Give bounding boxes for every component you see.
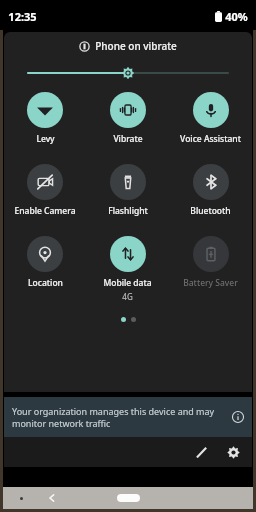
staticText: Location <box>28 277 63 289</box>
button[interactable]: Home <box>117 494 140 502</box>
staticText: Flashlight <box>108 205 148 217</box>
staticText: Bluetooth <box>190 205 231 217</box>
staticText: 12:35 <box>8 9 37 24</box>
staticText: Battery Saver <box>183 277 238 289</box>
button[interactable]: Voice Assistant <box>169 92 252 145</box>
button[interactable]: Battery Saver <box>169 236 252 289</box>
button[interactable]: Location <box>4 236 86 289</box>
other: Info <box>232 411 244 423</box>
button[interactable]: Vibrate <box>86 92 169 145</box>
button[interactable]: Bluetooth <box>169 164 252 217</box>
button[interactable]: Brightness <box>4 64 252 82</box>
button[interactable]: Levy <box>4 92 86 145</box>
staticText: 40% <box>225 9 248 24</box>
staticText: Voice Assistant <box>180 133 241 145</box>
staticText: Enable Camera <box>14 205 76 217</box>
staticText: Levy <box>36 133 55 145</box>
staticText: Vibrate <box>113 133 143 145</box>
button[interactable]: Your organization manages this device an… <box>4 397 252 437</box>
button[interactable]: Enable Camera <box>4 164 86 217</box>
staticText: Mobile data <box>103 277 152 289</box>
button[interactable]: Mobile data <box>86 236 169 302</box>
button[interactable]: Settings <box>219 438 247 466</box>
button[interactable]: Edit tiles <box>187 438 215 466</box>
staticText: Phone on vibrate <box>95 39 177 53</box>
staticText: 4G <box>122 291 133 302</box>
button[interactable]: Back <box>44 490 60 506</box>
button[interactable]: Flashlight <box>86 164 169 217</box>
staticText: Your organization manages this device an… <box>12 405 228 429</box>
